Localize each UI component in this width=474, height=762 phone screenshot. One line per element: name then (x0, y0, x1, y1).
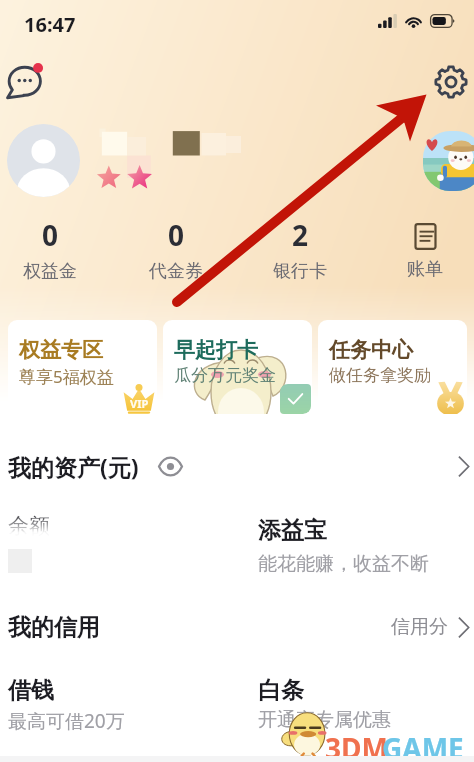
button[interactable]: 借钱 (0, 664, 237, 744)
button[interactable]: 余额 (0, 500, 237, 588)
button[interactable]: Profile avatar (7, 124, 80, 197)
staticText: 我的信用 (8, 613, 100, 642)
staticText: 代金券 (149, 260, 203, 283)
staticText: 开通享专属优惠 (258, 708, 391, 732)
staticText: 添益宝 (258, 516, 327, 545)
staticText: 做任务拿奖励 (329, 365, 431, 386)
staticText: 瓜分万元奖金 (174, 365, 276, 386)
staticText: 权益专区 (19, 337, 103, 363)
staticText: 账单 (407, 258, 443, 281)
button[interactable]: 我的资产(元) (0, 444, 474, 488)
button[interactable]: 0 (136, 216, 216, 284)
staticText: 0 (42, 216, 59, 254)
staticText: 3DM (325, 729, 388, 762)
button[interactable]: 早起打卡 (163, 320, 312, 414)
staticText: GAME (382, 729, 464, 762)
button[interactable]: 任务中心 (318, 320, 467, 414)
button[interactable]: Messages (2, 58, 48, 104)
staticText: 银行卡 (273, 260, 327, 283)
staticText: 尊享5福权益 (19, 365, 114, 388)
button[interactable]: 添益宝 (237, 500, 474, 588)
staticText: 任务中心 (329, 337, 413, 363)
staticText: 信用分 (391, 615, 448, 639)
staticText: 早起打卡 (174, 337, 258, 363)
staticText: 2 (292, 216, 309, 254)
staticText: 余额 (8, 513, 50, 539)
button[interactable]: 账单 (393, 216, 457, 284)
button[interactable]: 白条 (237, 664, 474, 744)
button[interactable]: VIP (8, 320, 157, 414)
button[interactable]: 我的信用 (0, 604, 474, 650)
button[interactable]: Settings (429, 60, 473, 104)
staticText: 0 (168, 216, 185, 254)
staticText: 白条 (258, 676, 304, 705)
staticText: 能花能赚，收益不断 (258, 552, 429, 576)
button[interactable]: 0 (10, 216, 90, 284)
button[interactable]: 2 (260, 216, 340, 284)
staticText: 最高可借20万 (8, 708, 125, 734)
staticText: VIP (130, 396, 149, 411)
staticText: 我的资产(元) (8, 451, 139, 482)
staticText: 权益金 (23, 260, 77, 283)
staticText: 16:47 (24, 11, 76, 38)
staticText: 借钱 (8, 676, 54, 705)
